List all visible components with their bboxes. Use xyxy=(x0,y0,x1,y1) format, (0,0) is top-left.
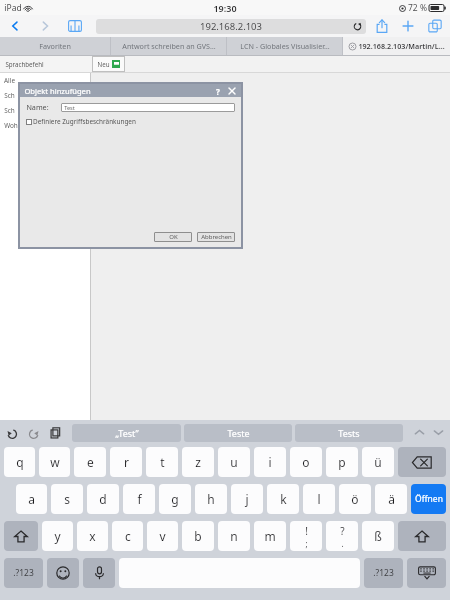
staticText: .?123 xyxy=(13,567,34,579)
staticText: r xyxy=(124,454,129,470)
button[interactable]: 192.168.2.103/Martin/L… xyxy=(343,37,450,55)
button[interactable]: a xyxy=(16,484,47,514)
button[interactable]: Test xyxy=(64,103,235,112)
button[interactable]: Öffnen xyxy=(411,484,446,514)
button[interactable]: w xyxy=(39,447,70,477)
button[interactable]: v xyxy=(147,521,178,551)
staticText: Objekt hinzufügen xyxy=(24,86,91,96)
button[interactable]: ! xyxy=(290,521,322,551)
staticText: s xyxy=(64,491,70,507)
button[interactable]: Previous field xyxy=(413,426,426,439)
staticText: ä xyxy=(388,491,395,507)
button[interactable]: Undo xyxy=(5,426,19,440)
button[interactable]: c xyxy=(112,521,143,551)
staticText: i xyxy=(268,454,272,470)
button[interactable]: o xyxy=(290,447,322,477)
button[interactable]: OK xyxy=(154,232,192,242)
staticText: .?123 xyxy=(373,567,394,579)
button[interactable]: u xyxy=(218,447,250,477)
button[interactable]: Back xyxy=(8,19,22,33)
staticText: m xyxy=(264,528,276,544)
staticText: Definiere Zugriffsbeschränkungen xyxy=(33,117,136,126)
staticText: q xyxy=(16,454,24,470)
button[interactable]: Shift xyxy=(398,521,446,551)
button[interactable]: Backspace xyxy=(398,447,446,477)
button[interactable]: r xyxy=(110,447,142,477)
button[interactable]: „Test” xyxy=(72,424,181,442)
staticText: n xyxy=(230,528,238,544)
button[interactable]: q xyxy=(4,447,35,477)
staticText: t xyxy=(160,454,165,470)
button[interactable]: LCN - Globales Visualisier… xyxy=(227,37,342,55)
button[interactable]: Redo xyxy=(27,426,41,440)
button[interactable]: l xyxy=(303,484,335,514)
staticText: w xyxy=(50,454,60,470)
staticText: 192.168.2.103/Martin/L… xyxy=(358,41,445,51)
staticText: 19:30 xyxy=(213,2,237,14)
button[interactable]: Shift xyxy=(4,521,38,551)
button[interactable]: Emoji xyxy=(47,558,79,588)
staticText: ! xyxy=(305,524,308,538)
button[interactable]: Definiere Zugriffsbeschränkungen xyxy=(26,117,241,126)
button[interactable]: x xyxy=(77,521,108,551)
button[interactable]: ü xyxy=(362,447,394,477)
button[interactable]: s xyxy=(51,484,83,514)
button[interactable]: Teste xyxy=(184,424,292,442)
button[interactable]: Tests xyxy=(295,424,403,442)
button[interactable]: Share xyxy=(376,19,388,33)
button[interactable]: Next field xyxy=(432,426,445,439)
button[interactable]: b xyxy=(182,521,214,551)
staticText: ; xyxy=(305,538,308,549)
button[interactable]: Close xyxy=(227,86,237,96)
button[interactable]: d xyxy=(87,484,119,514)
button[interactable]: .?123 xyxy=(364,558,403,588)
staticText: Abbrechen xyxy=(201,233,232,241)
button[interactable]: ä xyxy=(375,484,407,514)
button[interactable]: m xyxy=(254,521,286,551)
button[interactable]: Neu xyxy=(92,56,125,72)
button[interactable]: New tab xyxy=(401,19,415,33)
button[interactable]: ö xyxy=(339,484,371,514)
button[interactable]: k xyxy=(267,484,299,514)
button[interactable]: Reload xyxy=(353,22,362,31)
button[interactable]: h xyxy=(195,484,227,514)
staticText: Test xyxy=(64,104,75,112)
staticText: x xyxy=(89,528,96,544)
staticText: k xyxy=(280,491,287,507)
button[interactable]: z xyxy=(182,447,214,477)
button[interactable]: j xyxy=(231,484,263,514)
button[interactable]: p xyxy=(326,447,358,477)
button[interactable]: 192.168.2.103 xyxy=(96,19,366,34)
button[interactable]: Abbrechen xyxy=(197,232,235,242)
button[interactable]: Forward xyxy=(38,19,52,33)
button[interactable]: Antwort schreiben an GVS… xyxy=(111,37,226,55)
button[interactable]: Dictation xyxy=(83,558,115,588)
staticText: v xyxy=(159,528,166,544)
button[interactable]: ß xyxy=(362,521,394,551)
button[interactable]: Show all tabs xyxy=(428,19,442,33)
staticText: ö xyxy=(351,491,359,507)
button[interactable]: Favoriten xyxy=(0,37,110,55)
staticText: d xyxy=(99,491,107,507)
staticText: a xyxy=(28,491,35,507)
staticText: p xyxy=(338,454,346,470)
button[interactable]: y xyxy=(42,521,73,551)
button[interactable]: f xyxy=(123,484,155,514)
staticText: 72 % xyxy=(408,2,427,14)
button[interactable]: .?123 xyxy=(4,558,43,588)
staticText: Alle xyxy=(4,76,15,85)
button[interactable]: ? xyxy=(326,521,358,551)
button[interactable]: e xyxy=(74,447,106,477)
button[interactable]: i xyxy=(254,447,286,477)
button[interactable]: n xyxy=(218,521,250,551)
staticText: c xyxy=(125,528,131,544)
button[interactable]: Bookmarks xyxy=(68,20,82,32)
staticText: ? xyxy=(216,86,220,96)
staticText: g xyxy=(171,491,179,507)
button[interactable]: t xyxy=(146,447,178,477)
button[interactable]: Hide keyboard xyxy=(407,558,446,588)
button[interactable]: g xyxy=(159,484,191,514)
button[interactable]: Paste xyxy=(49,426,62,439)
button[interactable]: Help xyxy=(213,86,223,96)
